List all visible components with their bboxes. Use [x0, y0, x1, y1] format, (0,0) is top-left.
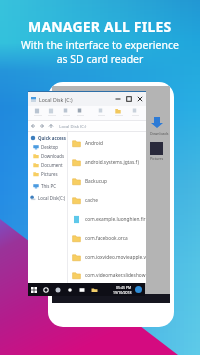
button[interactable]: android.systems.jgtas.f) — [68, 153, 146, 172]
other: Start — [31, 287, 37, 293]
button[interactable]: New folder — [115, 108, 123, 116]
button[interactable]: This PC — [28, 181, 67, 190]
staticText: With the interface to experience as SD c… — [21, 38, 179, 66]
button[interactable]: Close — [136, 95, 144, 103]
staticText: Quick access — [38, 135, 66, 141]
button[interactable]: com.facebook.orca — [68, 229, 146, 248]
button[interactable]: Android — [68, 134, 146, 153]
staticText: Downloads — [150, 131, 169, 136]
staticText: android.systems.jgtas.f) — [85, 159, 139, 166]
staticText: Local Disk (C:) — [56, 124, 87, 130]
staticText: Android — [85, 140, 103, 147]
staticText: Document — [41, 162, 63, 168]
staticText: Backucup — [85, 178, 107, 185]
button[interactable]: Properties — [132, 108, 139, 115]
button[interactable]: Desktop — [28, 142, 67, 151]
staticText: 05:45 PM — [116, 285, 132, 290]
staticText: com.facebook.orca — [85, 235, 128, 242]
staticText: cache — [85, 197, 98, 204]
button[interactable]: Copy — [48, 108, 56, 116]
staticText: com.ioxvideo.movieapple.vide — [85, 254, 146, 261]
button[interactable]: Downloads — [28, 151, 67, 160]
staticText: This PC — [41, 183, 56, 189]
button[interactable]: com.videomaker.slideshow.vi — [68, 267, 146, 283]
staticText: Local Disk (C:) — [39, 96, 73, 103]
button[interactable]: Minimize — [114, 95, 122, 103]
button[interactable]: Maximize — [125, 95, 133, 103]
button[interactable]: Paste — [63, 108, 70, 115]
button[interactable]: Rename — [98, 108, 105, 115]
staticText: Downloads — [41, 153, 64, 159]
staticText: 19/10/2018 — [113, 290, 132, 295]
button[interactable]: com.ioxvideo.movieapple.vide — [68, 248, 146, 267]
button[interactable]: Backucup — [68, 172, 146, 191]
staticText: com.example.luonghien.fireb — [85, 216, 146, 223]
button[interactable]: Document — [28, 160, 67, 169]
button[interactable]: Back — [30, 123, 36, 129]
staticText: MANAGER ALL FILES — [28, 17, 172, 36]
button[interactable]: Forward — [39, 123, 45, 129]
staticText: Pictures — [41, 171, 58, 177]
staticText: com.videomaker.slideshow.vi — [85, 272, 146, 279]
button[interactable]: cache — [68, 191, 146, 210]
button[interactable]: Quick access — [28, 133, 67, 142]
button[interactable]: Delete — [77, 108, 84, 115]
staticText: Desktop — [41, 144, 59, 150]
button[interactable]: Pictures — [28, 169, 67, 178]
button[interactable]: com.example.luonghien.fireb — [68, 210, 146, 229]
staticText: Pictures — [150, 156, 164, 161]
button[interactable]: Pin — [34, 108, 42, 116]
button[interactable]: Local Disk(C:) — [28, 193, 67, 202]
staticText: Local Disk(C:) — [38, 195, 66, 201]
